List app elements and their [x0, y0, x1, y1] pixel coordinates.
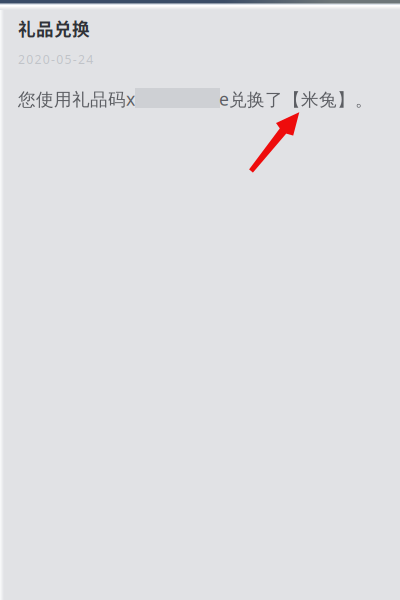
- staticText: 您使用礼品码x: [18, 87, 135, 111]
- staticText: 0: [43, 51, 50, 68]
- staticText: 2: [18, 51, 25, 68]
- staticText: 礼品兑换: [18, 15, 90, 40]
- staticText: -: [73, 51, 77, 68]
- staticText: e兑换了【米兔】。: [219, 87, 373, 111]
- staticText: 2: [34, 51, 41, 68]
- staticText: -: [51, 51, 55, 68]
- staticText: 2: [78, 51, 85, 68]
- staticText: 5: [64, 51, 71, 68]
- staticText: 0: [26, 51, 33, 68]
- staticText: 4: [86, 51, 93, 68]
- staticText: 0: [56, 51, 63, 68]
